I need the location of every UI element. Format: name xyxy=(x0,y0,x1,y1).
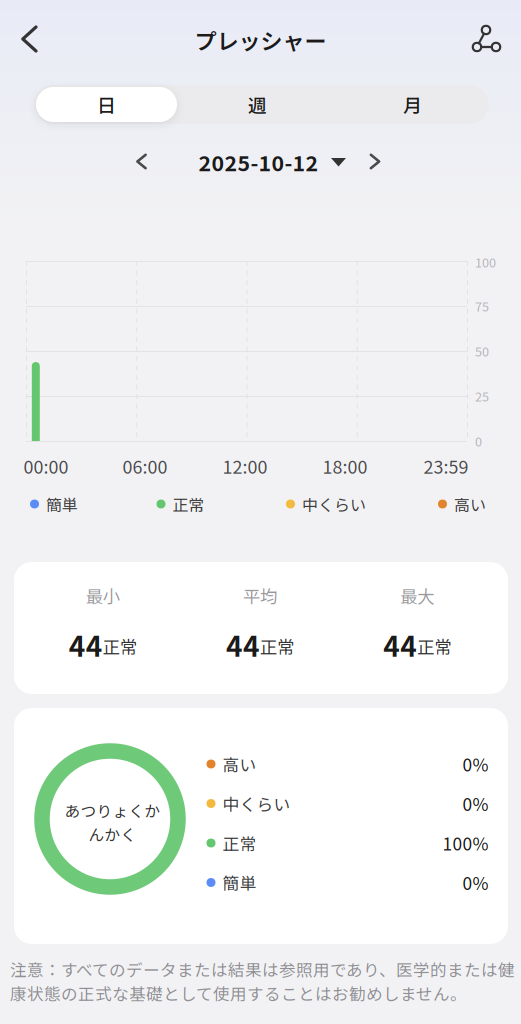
button[interactable]: Share xyxy=(467,20,511,64)
button[interactable]: 月 xyxy=(338,87,487,122)
staticText: 75 xyxy=(475,297,489,315)
staticText: 23:59 xyxy=(423,453,468,479)
staticText: 0 xyxy=(475,432,482,450)
staticText: 注意：すべてのデータまたは結果は参照用であり、医学的または健康状態の正式な基礎と… xyxy=(10,957,515,1005)
button[interactable]: Previous day xyxy=(135,153,148,170)
staticText: 簡単 xyxy=(222,870,256,894)
staticText: 平均 xyxy=(243,583,277,608)
staticText: 06:00 xyxy=(122,453,167,479)
staticText: 正常 xyxy=(222,831,256,855)
button[interactable]: 日 xyxy=(36,87,177,122)
button[interactable]: Select date xyxy=(198,147,346,177)
staticText: 12:00 xyxy=(222,453,267,479)
button[interactable]: 週 xyxy=(177,87,338,122)
staticText: 高い xyxy=(454,492,486,516)
staticText: 高い xyxy=(222,752,256,776)
staticText: 00:00 xyxy=(23,453,68,479)
staticText: 正常 xyxy=(260,634,294,659)
staticText: 25 xyxy=(475,387,489,405)
staticText: 0% xyxy=(462,870,488,895)
staticText: 18:00 xyxy=(322,453,367,479)
staticText: 週 xyxy=(248,91,267,118)
staticText: 2025-10-12 xyxy=(198,147,318,177)
staticText: 0% xyxy=(462,791,488,816)
staticText: 正常 xyxy=(103,634,137,659)
staticText: 最大 xyxy=(400,583,434,608)
button[interactable]: Back xyxy=(8,17,52,61)
staticText: 簡単 xyxy=(46,492,78,516)
staticText: 44 xyxy=(69,624,103,665)
staticText: 中くらい xyxy=(222,791,290,815)
staticText: 月 xyxy=(403,91,422,118)
staticText: 正常 xyxy=(172,492,204,516)
staticText: 44 xyxy=(383,624,417,665)
staticText: あつりょくか xyxy=(64,799,160,821)
staticText: プレッシャー xyxy=(194,24,326,56)
staticText: 44 xyxy=(226,624,260,665)
staticText: 100 xyxy=(475,253,496,271)
staticText: 最小 xyxy=(86,583,120,608)
staticText: 50 xyxy=(475,342,489,360)
staticText: 日 xyxy=(97,91,116,118)
staticText: 100% xyxy=(442,830,488,856)
button[interactable]: Next day xyxy=(368,153,381,170)
staticText: 0% xyxy=(462,751,488,777)
staticText: 中くらい xyxy=(302,492,366,516)
staticText: んかく xyxy=(88,822,136,845)
staticText: 正常 xyxy=(417,634,451,659)
